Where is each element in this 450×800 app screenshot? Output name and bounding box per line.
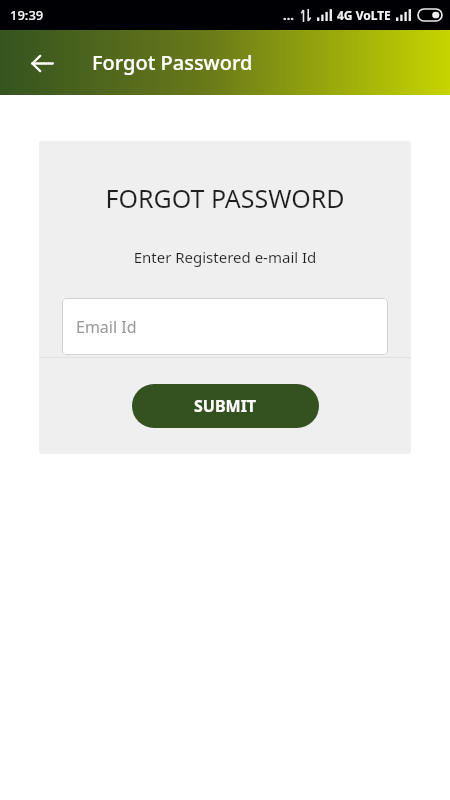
button[interactable]: Back	[18, 39, 66, 87]
staticText: 19:39	[10, 6, 44, 24]
button[interactable]: SUBMIT	[132, 384, 319, 428]
staticText: SUBMIT	[194, 395, 257, 417]
staticText: 4G VoLTE	[337, 7, 391, 23]
staticText: Forgot Password	[92, 49, 253, 76]
staticText: FORGOT PASSWORD	[39, 181, 411, 215]
staticText: Enter Registered e-mail Id	[39, 247, 411, 267]
staticText: ...	[283, 6, 294, 24]
button[interactable]: Email Id	[62, 298, 388, 355]
staticText: Email Id	[76, 316, 137, 338]
